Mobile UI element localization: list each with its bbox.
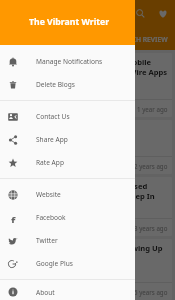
- staticText: Manage Notifications: [36, 57, 103, 66]
- button[interactable]: Rate App: [0, 151, 135, 174]
- button[interactable]: Website: [0, 183, 135, 206]
- button[interactable]: About: [0, 284, 135, 300]
- staticText: TECH REVIEW: [124, 35, 168, 44]
- button[interactable]: How To Get Website Traffic Increased Blo…: [3, 177, 172, 236]
- staticText: Important Tips For Your Blog Growing Up …: [7, 243, 163, 263]
- button[interactable]: How To Create Your Own Great Mobile Appl…: [3, 53, 172, 117]
- button[interactable]: Delete Blogs: [0, 73, 135, 96]
- button[interactable]: Manage Notifications: [0, 50, 135, 73]
- button[interactable]: Contact Us: [0, 105, 135, 128]
- staticText: About: [36, 288, 55, 297]
- button[interactable]: BLOG NEWS: [0, 27, 116, 50]
- staticText: How To Create Your Own Great Mobile Appl…: [7, 57, 168, 77]
- staticText: 3 years ago: [134, 224, 168, 232]
- staticText: The Vibrant Writer: [29, 16, 110, 28]
- button[interactable]: Share App: [0, 128, 135, 151]
- staticText: Contact Us: [36, 112, 70, 121]
- staticText: Share App: [36, 135, 68, 144]
- staticText: 2 years ago: [134, 162, 168, 170]
- button[interactable]: Search: [131, 4, 149, 22]
- button[interactable]: TECH REVIEW: [116, 27, 175, 50]
- staticText: Facebook: [36, 213, 66, 222]
- button[interactable]: Favorites: [154, 5, 172, 23]
- button[interactable]: Write Better Blog Post: [3, 120, 172, 174]
- staticText: How To Get Website Traffic Increased Blo…: [7, 181, 155, 201]
- staticText: 1 year ago: [137, 105, 168, 113]
- button[interactable]: f: [0, 206, 135, 229]
- staticText: Google Plus: [36, 259, 73, 268]
- staticText: Rate App: [36, 158, 64, 167]
- button[interactable]: Important Tips For Your Blog Growing Up …: [3, 239, 172, 300]
- staticText: Delete Blogs: [36, 80, 75, 89]
- button[interactable]: Google Plus: [0, 252, 135, 275]
- staticText: f: [11, 213, 16, 223]
- staticText: Website: [36, 190, 61, 199]
- button[interactable]: Twitter: [0, 229, 135, 252]
- staticText: 5 years ago: [134, 288, 168, 296]
- staticText: Twitter: [36, 236, 58, 245]
